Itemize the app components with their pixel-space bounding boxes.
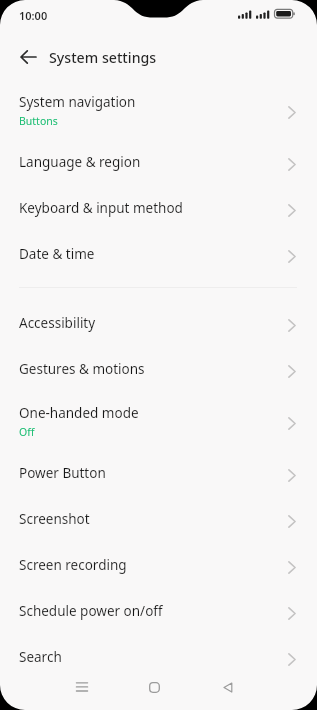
staticText: Date & time xyxy=(19,245,95,263)
button[interactable]: Schedule power on/off xyxy=(0,590,317,636)
staticText: System navigation xyxy=(19,93,136,111)
button[interactable]: Accessibility xyxy=(0,302,317,348)
button[interactable] xyxy=(20,45,44,69)
staticText: 10:00 xyxy=(19,8,48,23)
button[interactable]: Language & region xyxy=(0,141,317,187)
staticText: Off xyxy=(19,425,35,439)
button[interactable]: Gestures & motions xyxy=(0,348,317,394)
button[interactable] xyxy=(191,673,264,701)
staticText: Buttons xyxy=(19,114,58,128)
staticText: Screen recording xyxy=(19,556,127,574)
staticText: Accessibility xyxy=(19,314,96,332)
staticText: Search xyxy=(19,648,62,666)
staticText: One-handed mode xyxy=(19,404,139,422)
staticText: Language & region xyxy=(19,153,141,171)
staticText: Schedule power on/off xyxy=(19,602,163,620)
staticText: Gestures & motions xyxy=(19,360,145,378)
button[interactable] xyxy=(118,673,191,701)
button[interactable]: Date & time xyxy=(0,233,317,279)
staticText: System settings xyxy=(49,48,157,67)
staticText: Screenshot xyxy=(19,510,90,528)
button[interactable]: Screenshot xyxy=(0,498,317,544)
button[interactable]: One-handed mode xyxy=(0,394,317,452)
staticText: Keyboard & input method xyxy=(19,199,183,217)
button[interactable]: Search xyxy=(0,636,317,682)
staticText: Power Button xyxy=(19,464,106,482)
button[interactable]: Keyboard & input method xyxy=(0,187,317,233)
button[interactable] xyxy=(45,673,118,701)
button[interactable]: Power Button xyxy=(0,452,317,498)
button[interactable]: Screen recording xyxy=(0,544,317,590)
button[interactable]: System navigation xyxy=(0,84,317,141)
